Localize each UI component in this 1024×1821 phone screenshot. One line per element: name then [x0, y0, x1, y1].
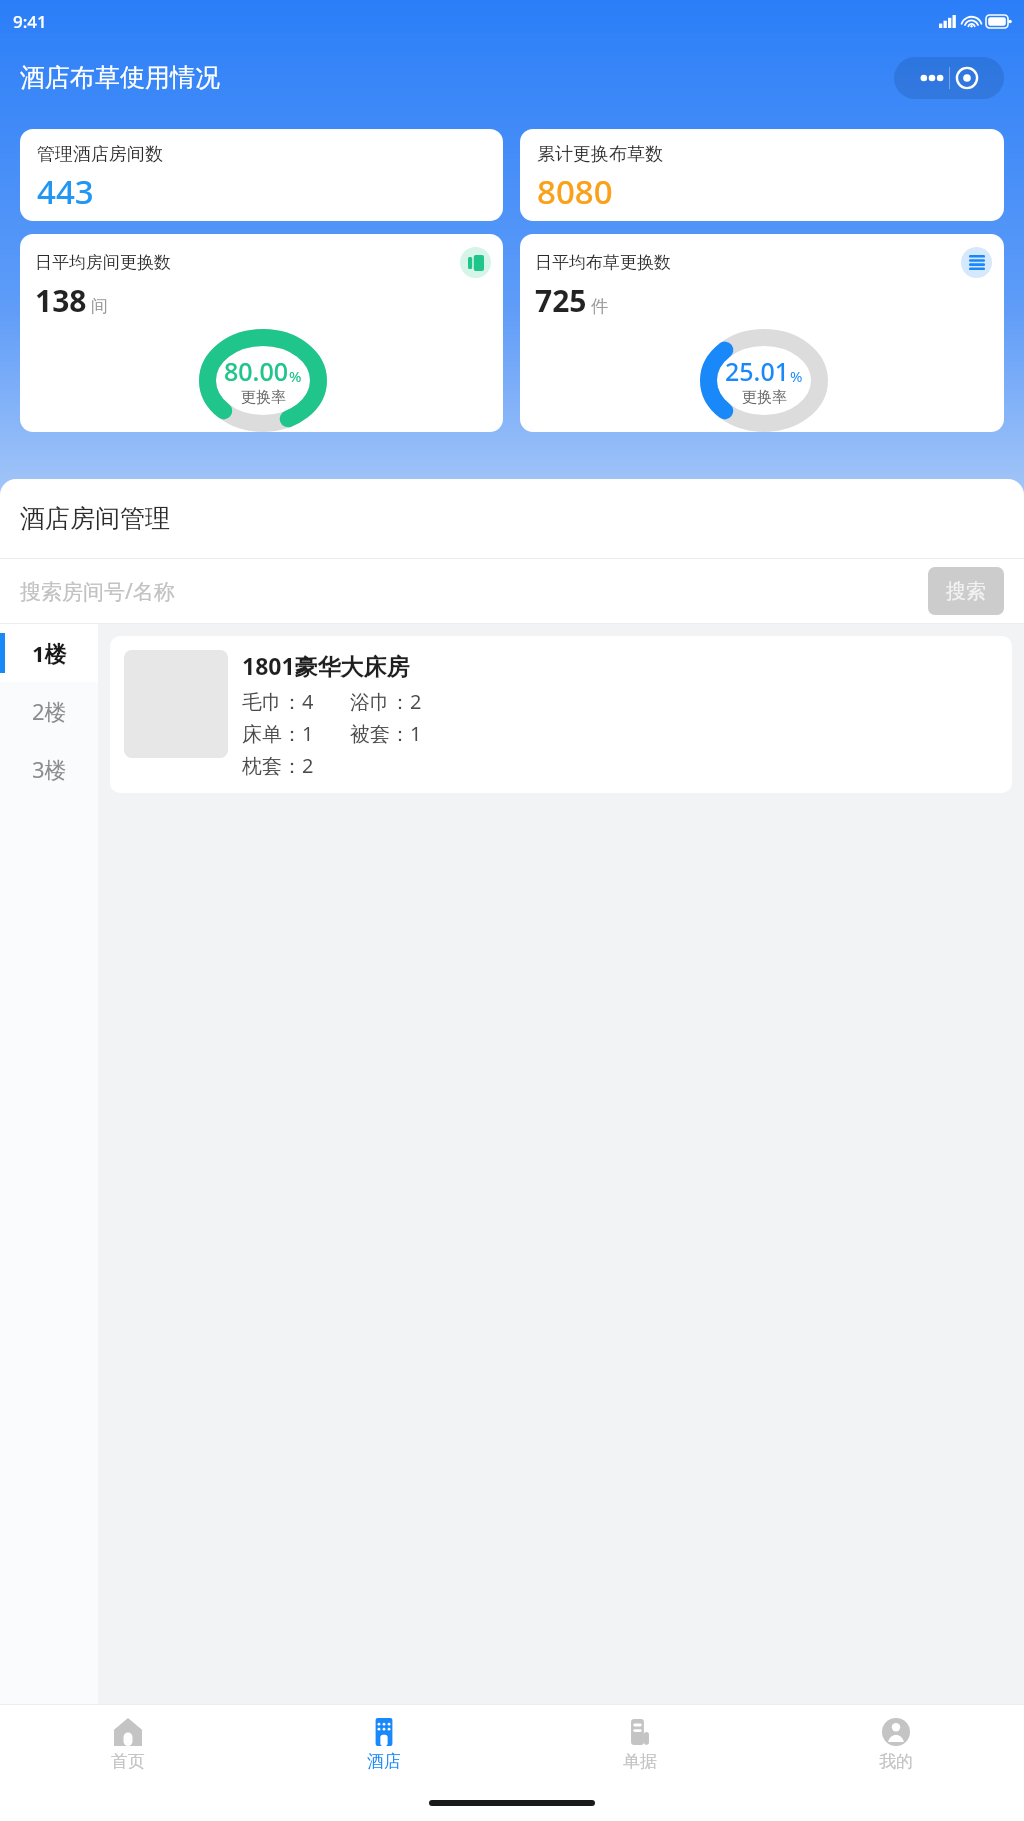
staticText: 首页 — [111, 1751, 145, 1772]
staticText: 3楼 — [32, 754, 67, 784]
button[interactable]: 搜索房间号/名称 — [20, 577, 928, 606]
staticText: % — [790, 366, 803, 386]
button[interactable]: 首页 — [0, 1705, 256, 1785]
staticText: 毛巾：4 — [242, 688, 330, 715]
staticText: 1楼 — [32, 638, 67, 668]
staticText: 80.00 — [224, 354, 289, 388]
button[interactable]: 日平均布草更换数 — [520, 234, 1004, 432]
button[interactable]: 累计更换布草数 — [520, 129, 1004, 221]
staticText: 8080 — [537, 169, 613, 214]
button[interactable]: 搜索 — [928, 567, 1004, 615]
button[interactable]: More and Close — [894, 57, 1004, 99]
staticText: 日平均房间更换数 — [35, 252, 460, 273]
staticText: 单据 — [623, 1751, 657, 1772]
button[interactable]: 单据 — [512, 1705, 768, 1785]
staticText: 9:41 — [13, 10, 47, 33]
staticText: 酒店布草使用情况 — [20, 62, 220, 93]
staticText: 被套：1 — [350, 720, 422, 747]
staticText: 管理酒店房间数 — [37, 143, 163, 166]
staticText: 我的 — [879, 1751, 913, 1772]
staticText: 更换率 — [742, 388, 787, 407]
button[interactable]: 3楼 — [0, 740, 98, 798]
staticText: 2楼 — [32, 696, 67, 726]
staticText: 累计更换布草数 — [537, 143, 663, 166]
button[interactable]: 管理酒店房间数 — [20, 129, 503, 221]
button[interactable]: 1楼 — [0, 624, 98, 682]
button[interactable]: 2楼 — [0, 682, 98, 740]
staticText: 枕套：2 — [242, 752, 330, 779]
staticText: 间 — [91, 296, 108, 317]
staticText: 25.01 — [725, 354, 790, 388]
button[interactable]: 我的 — [768, 1705, 1024, 1785]
staticText: 酒店房间管理 — [20, 503, 170, 534]
staticText: 138 — [35, 280, 87, 321]
staticText: 件 — [591, 296, 608, 317]
staticText: 443 — [37, 169, 94, 214]
staticText: 日平均布草更换数 — [535, 252, 961, 273]
staticText: 1801豪华大床房 — [242, 650, 410, 681]
staticText: 725 — [535, 280, 587, 321]
button[interactable]: 日平均房间更换数 — [20, 234, 503, 432]
staticText: 搜索 — [946, 579, 986, 604]
staticText: 浴巾：2 — [350, 688, 422, 715]
staticText: % — [289, 366, 302, 386]
staticText: 床单：1 — [242, 720, 330, 747]
button[interactable]: 1801豪华大床房 — [110, 636, 1012, 793]
staticText: 酒店 — [367, 1751, 401, 1772]
button[interactable]: 酒店 — [256, 1705, 512, 1785]
staticText: 更换率 — [241, 388, 286, 407]
